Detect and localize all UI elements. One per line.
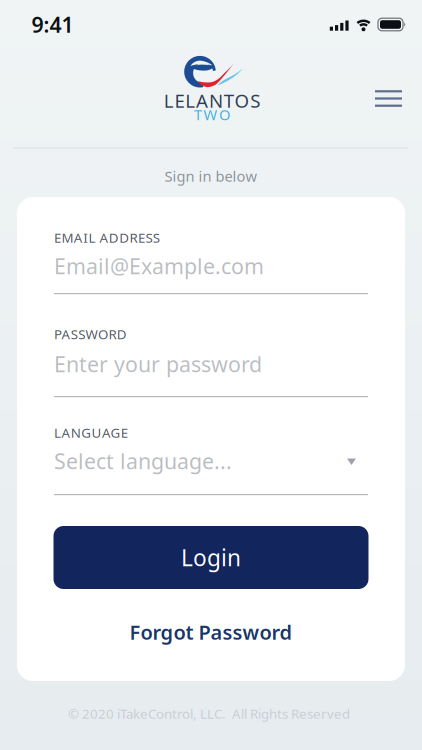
- staticText: S: [250, 88, 260, 113]
- staticText: Login: [181, 542, 241, 572]
- staticText: PASSWORD: [54, 325, 127, 343]
- button[interactable]: Login: [53, 526, 368, 589]
- button[interactable]: Menu: [366, 80, 410, 116]
- staticText: N: [209, 88, 223, 113]
- staticText: Sign in below: [164, 166, 257, 186]
- staticText: E: [174, 88, 184, 113]
- staticText: A: [196, 88, 208, 113]
- staticText: Select language...: [54, 447, 232, 475]
- staticText: 9:41: [31, 10, 73, 39]
- staticText: L: [164, 88, 174, 113]
- staticText: © 2020 iTakeControl, LLC. All Rights Res…: [68, 705, 350, 722]
- staticText: Email@Example.com: [54, 252, 264, 280]
- staticText: Forgot Password: [129, 619, 292, 645]
- button[interactable]: Forgot Password: [129, 619, 292, 645]
- staticText: EMAIL ADDRESS: [54, 229, 160, 246]
- staticText: W: [203, 105, 217, 124]
- staticText: O: [234, 88, 249, 113]
- staticText: Enter your password: [54, 350, 262, 378]
- staticText: T: [194, 105, 202, 124]
- staticText: T: [224, 88, 234, 113]
- staticText: LANGUAGE: [54, 424, 128, 441]
- staticText: O: [219, 105, 230, 124]
- staticText: L: [185, 88, 195, 113]
